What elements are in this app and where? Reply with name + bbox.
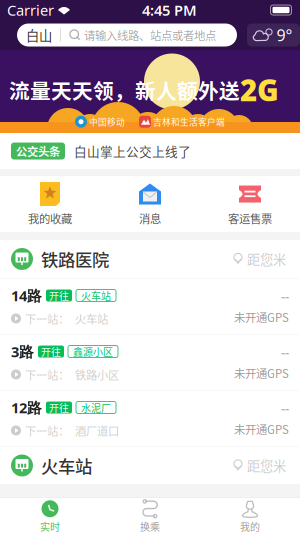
staticText: 实时 — [40, 519, 60, 533]
button[interactable]: 我的 — [200, 497, 300, 533]
button[interactable]: 12路 — [0, 390, 300, 446]
button[interactable]: 3路 — [0, 334, 300, 390]
staticText: 3路 — [11, 342, 34, 361]
staticText: 开往 — [49, 288, 69, 303]
staticText: 9° — [276, 24, 292, 46]
staticText: Carrier — [7, 0, 54, 20]
staticText: 请输入线路、站点或者地点 — [84, 27, 216, 43]
staticText: 14路 — [11, 286, 42, 305]
button[interactable]: 实时 — [0, 497, 100, 533]
staticText: 白山掌上公交上线了 — [74, 142, 191, 160]
staticText: 开往 — [41, 344, 61, 359]
staticText: 换乘 — [140, 519, 160, 533]
staticText: 铁路医院 — [41, 246, 109, 272]
staticText: 12路 — [11, 398, 42, 417]
staticText: 下一站： 铁路小区 — [25, 366, 119, 383]
staticText: 未开通GPS — [234, 309, 289, 325]
button[interactable]: 消息 — [100, 176, 200, 232]
staticText: -- — [281, 343, 289, 361]
staticText: 公交头条 — [16, 143, 60, 159]
staticText: 下一站： 酒厂道口 — [25, 422, 119, 439]
staticText: 我的 — [240, 519, 260, 533]
button[interactable]: 换乘 — [100, 497, 200, 533]
button[interactable]: 公交头条 — [0, 133, 300, 169]
button[interactable]: 铁路医院 — [0, 240, 300, 278]
staticText: 未开通GPS — [234, 365, 289, 381]
staticText: 中国移动 — [89, 115, 125, 128]
staticText: 距您米 — [247, 456, 286, 475]
staticText: 距您米 — [247, 249, 286, 269]
staticText: 流量天天领，新人额外送 — [9, 75, 240, 105]
button[interactable]: 14路 — [0, 278, 300, 334]
staticText: -- — [281, 287, 289, 305]
staticText: 4:45 PM — [142, 0, 197, 20]
button[interactable]: 白山 — [17, 23, 237, 46]
staticText: 火车站 — [41, 453, 92, 478]
staticText: 开往 — [49, 400, 69, 415]
staticText: 下一站： 火车站 — [25, 310, 108, 327]
staticText: 鑫源小区 — [73, 344, 113, 359]
staticText: 消息 — [139, 210, 161, 226]
button[interactable]: Promotion banner — [0, 50, 300, 133]
staticText: 水泥厂 — [81, 400, 111, 415]
staticText: 2G — [240, 70, 279, 109]
button[interactable]: 火车站 — [0, 446, 300, 484]
button[interactable]: 客运售票 — [200, 176, 300, 232]
staticText: 白山 — [26, 25, 52, 45]
button[interactable]: Weather 9 degrees — [247, 23, 300, 46]
staticText: 未开通GPS — [234, 421, 289, 437]
staticText: 火车站 — [81, 288, 111, 303]
staticText: 吉林和生活客户端 — [153, 115, 225, 128]
staticText: 我的收藏 — [28, 210, 72, 226]
staticText: 客运售票 — [228, 210, 272, 226]
staticText: -- — [281, 399, 289, 417]
button[interactable]: 我的收藏 — [0, 176, 100, 232]
